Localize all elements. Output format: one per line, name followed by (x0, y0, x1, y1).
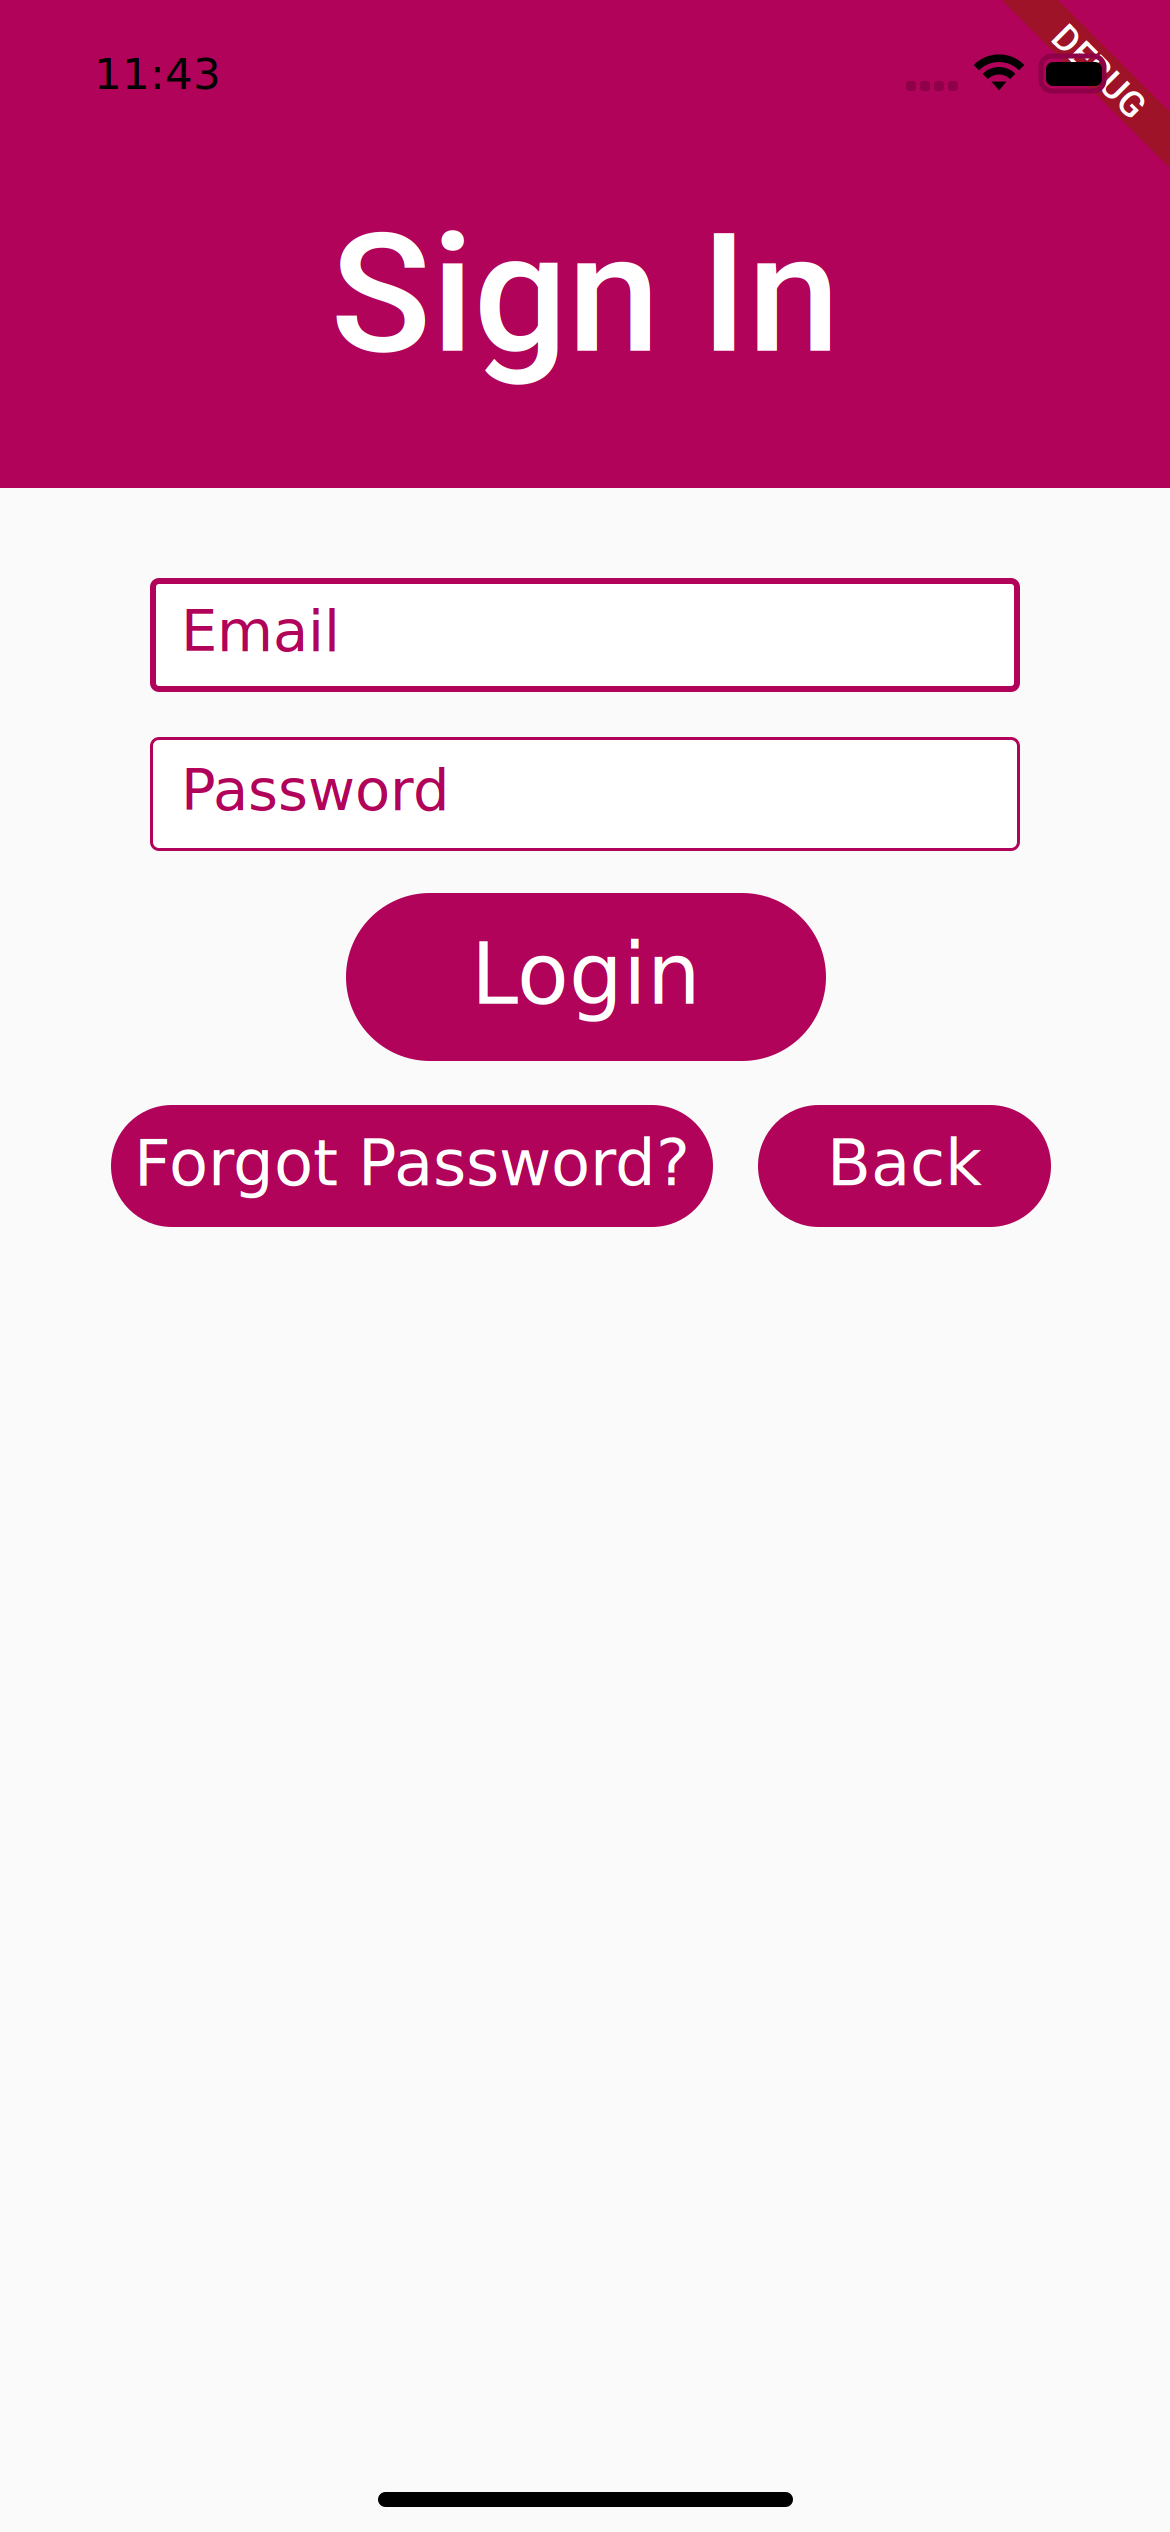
button[interactable]: Login (346, 893, 826, 1061)
staticText: Email (181, 597, 340, 664)
staticText: Forgot Password? (134, 1126, 690, 1200)
staticText: Password (181, 756, 449, 823)
staticText: 11:43 (94, 49, 221, 99)
staticText: DEBUG (1041, 51, 1157, 93)
staticText: Login (471, 925, 701, 1024)
button[interactable]: Password (150, 737, 1020, 851)
button[interactable]: Back (758, 1105, 1051, 1227)
button[interactable]: Forgot Password? (111, 1105, 713, 1227)
button[interactable]: Email (150, 578, 1020, 692)
staticText: Back (827, 1126, 982, 1200)
staticText: Sign In (330, 197, 839, 391)
